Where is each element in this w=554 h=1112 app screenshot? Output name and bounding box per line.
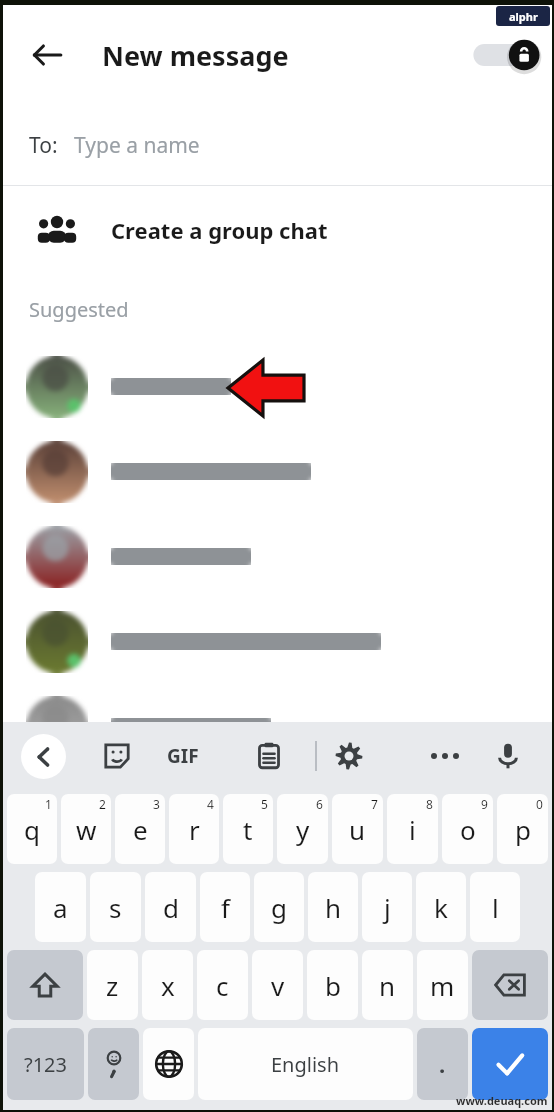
button[interactable]: . bbox=[417, 1028, 468, 1100]
button[interactable]: j bbox=[362, 872, 412, 942]
staticText: a bbox=[53, 890, 68, 925]
button[interactable] bbox=[3, 599, 552, 684]
button[interactable]: Back bbox=[21, 29, 73, 81]
button[interactable]: Voice input bbox=[486, 734, 530, 778]
button[interactable]: More options bbox=[431, 736, 477, 776]
staticText: 4 bbox=[207, 796, 214, 812]
button[interactable] bbox=[3, 429, 552, 514]
staticText: alphr bbox=[509, 9, 538, 24]
button[interactable] bbox=[3, 514, 552, 599]
staticText: Suggested bbox=[29, 296, 129, 323]
button[interactable]: l bbox=[470, 872, 520, 942]
staticText: p bbox=[515, 812, 531, 847]
button[interactable]: p bbox=[497, 794, 548, 864]
button[interactable]: Send bbox=[472, 1028, 548, 1100]
button[interactable]: a bbox=[35, 872, 86, 942]
staticText: v bbox=[271, 968, 285, 1003]
button[interactable]: Close keyboard toolbar bbox=[21, 734, 66, 779]
button[interactable]: GIF bbox=[167, 743, 199, 769]
staticText: b bbox=[325, 968, 341, 1003]
button[interactable]: t bbox=[223, 794, 273, 864]
staticText: ?123 bbox=[24, 1051, 67, 1078]
staticText: Create a group chat bbox=[111, 215, 328, 245]
button[interactable]: Change language bbox=[143, 1028, 194, 1100]
button[interactable]: Settings bbox=[327, 734, 371, 778]
button[interactable]: ?123 bbox=[7, 1028, 84, 1100]
staticText: t bbox=[243, 812, 253, 847]
staticText: 7 bbox=[371, 796, 378, 812]
button[interactable]: e bbox=[115, 794, 165, 864]
staticText: x bbox=[161, 968, 175, 1003]
staticText: g bbox=[271, 890, 287, 925]
button[interactable]: n bbox=[362, 950, 413, 1020]
staticText: r bbox=[189, 812, 200, 847]
button[interactable] bbox=[3, 684, 552, 769]
staticText: f bbox=[221, 890, 230, 925]
button[interactable]: r bbox=[169, 794, 219, 864]
button[interactable]: Emoji and comma bbox=[88, 1028, 139, 1100]
button[interactable]: k bbox=[416, 872, 466, 942]
button[interactable]: h bbox=[308, 872, 358, 942]
staticText: Type a name bbox=[74, 131, 200, 160]
button[interactable]: Shift bbox=[7, 950, 83, 1020]
button[interactable]: u bbox=[332, 794, 383, 864]
staticText: q bbox=[24, 812, 40, 847]
staticText: 5 bbox=[261, 796, 268, 812]
staticText: l bbox=[492, 890, 499, 925]
staticText: w bbox=[76, 812, 97, 847]
button[interactable]: English bbox=[198, 1028, 413, 1100]
button[interactable]: Create a group chat bbox=[3, 186, 552, 274]
staticText: i bbox=[409, 812, 416, 847]
button[interactable]: z bbox=[87, 950, 138, 1020]
staticText: . bbox=[439, 1049, 446, 1079]
staticText: d bbox=[163, 890, 179, 925]
staticText: 8 bbox=[426, 796, 433, 812]
button[interactable]: Clipboard bbox=[247, 734, 291, 778]
staticText: o bbox=[460, 812, 476, 847]
button[interactable]: b bbox=[307, 950, 358, 1020]
staticText: c bbox=[216, 968, 229, 1003]
staticText: k bbox=[434, 890, 448, 925]
button[interactable]: v bbox=[252, 950, 303, 1020]
staticText: 0 bbox=[536, 796, 543, 812]
staticText: English bbox=[271, 1051, 340, 1078]
staticText: 2 bbox=[99, 796, 106, 812]
button[interactable]: Stickers bbox=[95, 734, 139, 778]
staticText: 1 bbox=[45, 796, 52, 812]
staticText: z bbox=[106, 968, 119, 1003]
staticText: m bbox=[430, 968, 455, 1003]
staticText: y bbox=[296, 812, 310, 847]
button[interactable]: y bbox=[277, 794, 328, 864]
button[interactable]: o bbox=[442, 794, 493, 864]
staticText: u bbox=[349, 812, 366, 847]
button[interactable]: w bbox=[61, 794, 111, 864]
button[interactable]: g bbox=[254, 872, 304, 942]
button[interactable]: End-to-end encryption toggle bbox=[466, 29, 540, 81]
button[interactable]: d bbox=[145, 872, 196, 942]
button[interactable]: s bbox=[90, 872, 141, 942]
button[interactable]: c bbox=[197, 950, 248, 1020]
staticText: New message bbox=[102, 37, 289, 74]
staticText: n bbox=[379, 968, 396, 1003]
staticText: 3 bbox=[153, 796, 160, 812]
button[interactable]: i bbox=[387, 794, 438, 864]
staticText: e bbox=[133, 812, 148, 847]
staticText: 6 bbox=[316, 796, 323, 812]
staticText: j bbox=[384, 890, 391, 925]
button[interactable]: m bbox=[417, 950, 468, 1020]
button[interactable]: Backspace bbox=[472, 950, 548, 1020]
button[interactable] bbox=[3, 344, 552, 429]
button[interactable]: x bbox=[142, 950, 193, 1020]
button[interactable]: To: bbox=[3, 105, 552, 185]
staticText: www.deuaq.com bbox=[456, 1093, 548, 1108]
staticText: s bbox=[109, 890, 122, 925]
staticText: 9 bbox=[481, 796, 488, 812]
staticText: To: bbox=[29, 131, 58, 160]
button[interactable]: q bbox=[7, 794, 57, 864]
staticText: h bbox=[325, 890, 342, 925]
button[interactable]: f bbox=[200, 872, 250, 942]
